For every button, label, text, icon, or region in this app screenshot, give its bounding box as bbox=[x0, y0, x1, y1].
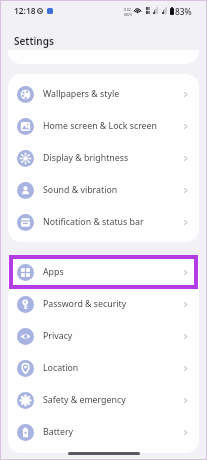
button[interactable]: Apps bbox=[8, 256, 199, 288]
staticText: 0.02 bbox=[124, 7, 132, 12]
button[interactable]: Notification & status bar bbox=[8, 206, 199, 238]
button[interactable]: Sound & vibration bbox=[8, 174, 199, 206]
button[interactable]: Location bbox=[8, 352, 199, 384]
staticText: Wallpapers & style bbox=[43, 88, 120, 100]
staticText: Home screen & Lock screen bbox=[43, 120, 157, 132]
button[interactable]: Wallpapers & style bbox=[8, 78, 199, 110]
button[interactable]: Safety & emergency bbox=[8, 384, 199, 416]
staticText: Notification & status bar bbox=[43, 216, 144, 228]
staticText: Battery bbox=[43, 426, 74, 438]
staticText: Safety & emergency bbox=[43, 394, 126, 406]
button[interactable]: Battery bbox=[8, 416, 199, 448]
button[interactable]: Display & brightness bbox=[8, 142, 199, 174]
staticText: 83% bbox=[175, 6, 192, 17]
staticText: Privacy bbox=[43, 330, 73, 342]
button[interactable]: Home screen & Lock screen bbox=[8, 110, 199, 142]
staticText: Apps bbox=[43, 266, 64, 278]
button[interactable]: Privacy bbox=[8, 320, 199, 352]
staticText: 12:18 bbox=[14, 5, 36, 16]
staticText: Display & brightness bbox=[43, 152, 129, 164]
staticText: Password & security bbox=[43, 298, 127, 310]
staticText: Location bbox=[43, 362, 79, 374]
button[interactable]: Password & security bbox=[8, 288, 199, 320]
staticText: Settings bbox=[14, 34, 54, 48]
staticText: KB/S bbox=[124, 12, 132, 17]
staticText: Sound & vibration bbox=[43, 184, 118, 196]
